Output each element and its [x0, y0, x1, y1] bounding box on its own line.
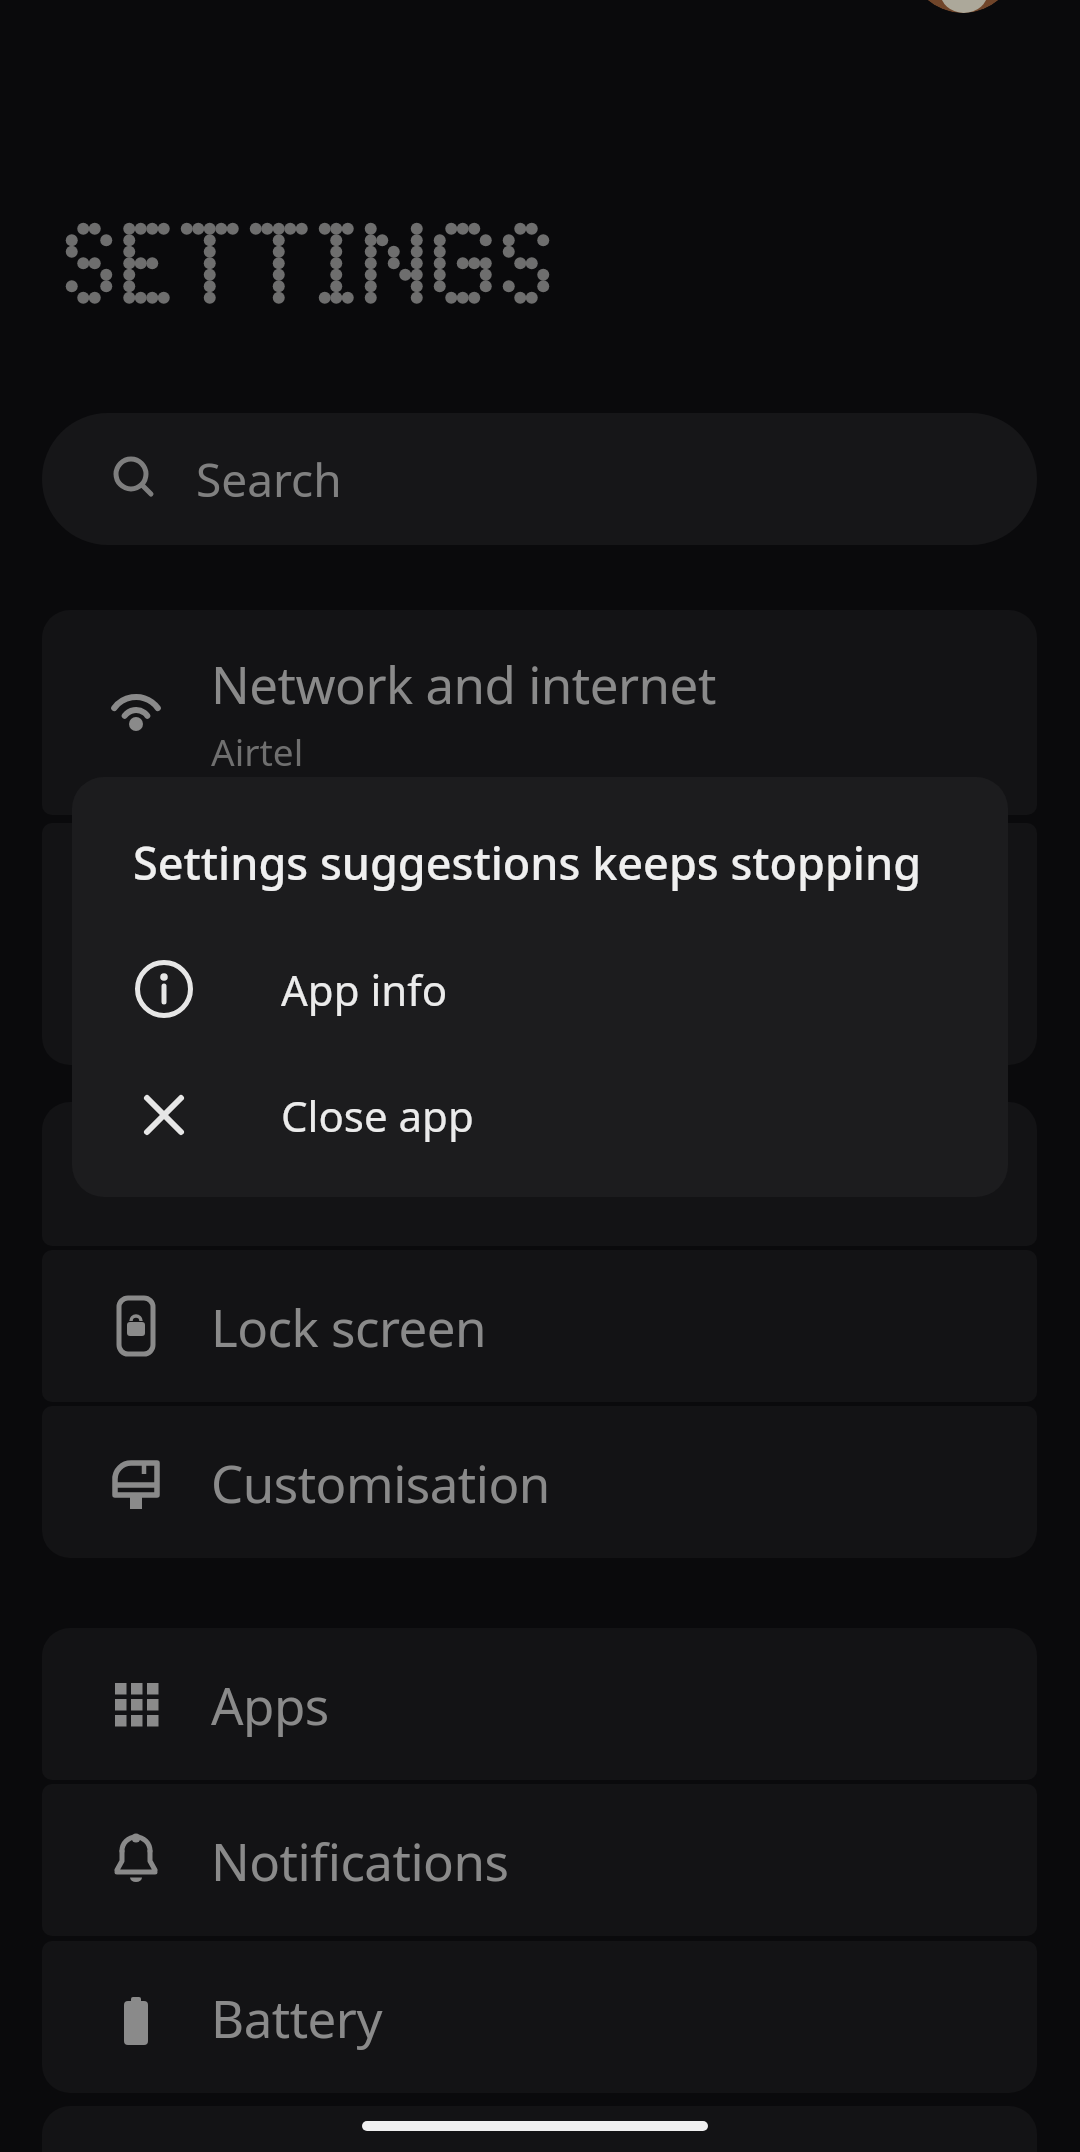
button[interactable]: Network and internet: [42, 610, 1037, 815]
staticText: Settings suggestions keeps stopping: [133, 832, 922, 893]
staticText: Network and internet: [211, 649, 716, 718]
staticText: Close app: [281, 1087, 474, 1144]
button[interactable]: App info: [72, 926, 1008, 1052]
staticText: Battery: [211, 1983, 382, 2052]
button[interactable]: [42, 1102, 1037, 1246]
button[interactable]: Lock screen: [42, 1250, 1037, 1402]
staticText: Customisation: [211, 1448, 550, 1517]
button[interactable]: Notifications: [42, 1784, 1037, 1936]
button[interactable]: Close app: [72, 1052, 1008, 1178]
staticText: Airtel: [211, 726, 304, 776]
button[interactable]: Customisation: [42, 1406, 1037, 1558]
button[interactable]: Search: [42, 413, 1037, 545]
staticText: Search: [196, 448, 342, 511]
button[interactable]: Apps: [42, 1628, 1037, 1780]
staticText: Lock screen: [211, 1292, 487, 1361]
staticText: Apps: [211, 1670, 329, 1739]
button[interactable]: Battery: [42, 1941, 1037, 2093]
staticText: App info: [281, 961, 448, 1018]
staticText: Notifications: [211, 1826, 509, 1895]
button[interactable]: [42, 823, 1037, 1065]
